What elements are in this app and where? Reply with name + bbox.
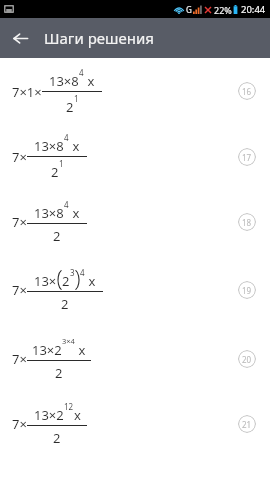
button[interactable]: Back (0, 18, 40, 58)
staticText: 1 (74, 93, 79, 104)
button[interactable]: 16 (238, 82, 256, 100)
staticText: 7× (12, 415, 27, 433)
staticText: 4 (80, 267, 85, 278)
staticText: 1 (59, 158, 64, 169)
staticText: 4 (79, 67, 84, 78)
staticText: 7×1× (12, 83, 42, 101)
button[interactable]: 20 (238, 350, 256, 368)
staticText: 7× (12, 350, 27, 368)
staticText: 4 (64, 132, 69, 143)
staticText: 2 (53, 429, 61, 447)
staticText: 7× (12, 213, 27, 231)
staticText: x (75, 341, 86, 359)
button[interactable]: 7× (0, 326, 270, 391)
staticText: 13×8 (34, 137, 64, 155)
staticText: Шаги решения (44, 28, 154, 48)
staticText: 2 (61, 295, 69, 313)
staticText: x (69, 204, 80, 222)
staticText: x (84, 72, 95, 90)
staticText: 12 (64, 401, 74, 412)
staticText: x (74, 406, 81, 424)
button[interactable]: 7×1× (0, 58, 270, 124)
button[interactable]: 7× (0, 254, 270, 326)
staticText: 3×4 (62, 336, 75, 346)
button[interactable]: 7× (0, 124, 270, 189)
staticText: G (186, 4, 192, 15)
staticText: 7× (12, 281, 27, 299)
staticText: 13×2 (32, 341, 62, 359)
staticText: 2 (51, 163, 59, 181)
staticText: 21 (242, 419, 252, 430)
staticText: 19 (242, 285, 252, 296)
staticText: 16 (242, 86, 252, 97)
staticText: 3 (70, 267, 75, 278)
staticText: 2 (66, 98, 74, 116)
staticText: 17 (242, 152, 252, 163)
button[interactable]: 7× (0, 189, 270, 254)
staticText: 18 (242, 217, 252, 228)
staticText: 2 (62, 272, 70, 290)
staticText: x (85, 272, 96, 290)
staticText: 2 (55, 364, 63, 382)
button[interactable]: 17 (238, 148, 256, 166)
staticText: 20:44 (241, 3, 266, 16)
staticText: 2 (53, 227, 61, 245)
staticText: x (69, 137, 80, 155)
staticText: 13×8 (34, 204, 64, 222)
staticText: 4 (64, 199, 69, 210)
staticText: 20 (242, 354, 252, 365)
staticText: 22% (214, 4, 232, 16)
button[interactable]: 21 (238, 415, 256, 433)
staticText: 13×2 (34, 406, 64, 424)
button[interactable]: 18 (238, 213, 256, 231)
button[interactable]: 7× (0, 391, 270, 456)
button[interactable]: 19 (238, 281, 256, 299)
staticText: 7× (12, 148, 27, 166)
staticText: 13× (34, 272, 57, 290)
staticText: 13×8 (49, 72, 79, 90)
